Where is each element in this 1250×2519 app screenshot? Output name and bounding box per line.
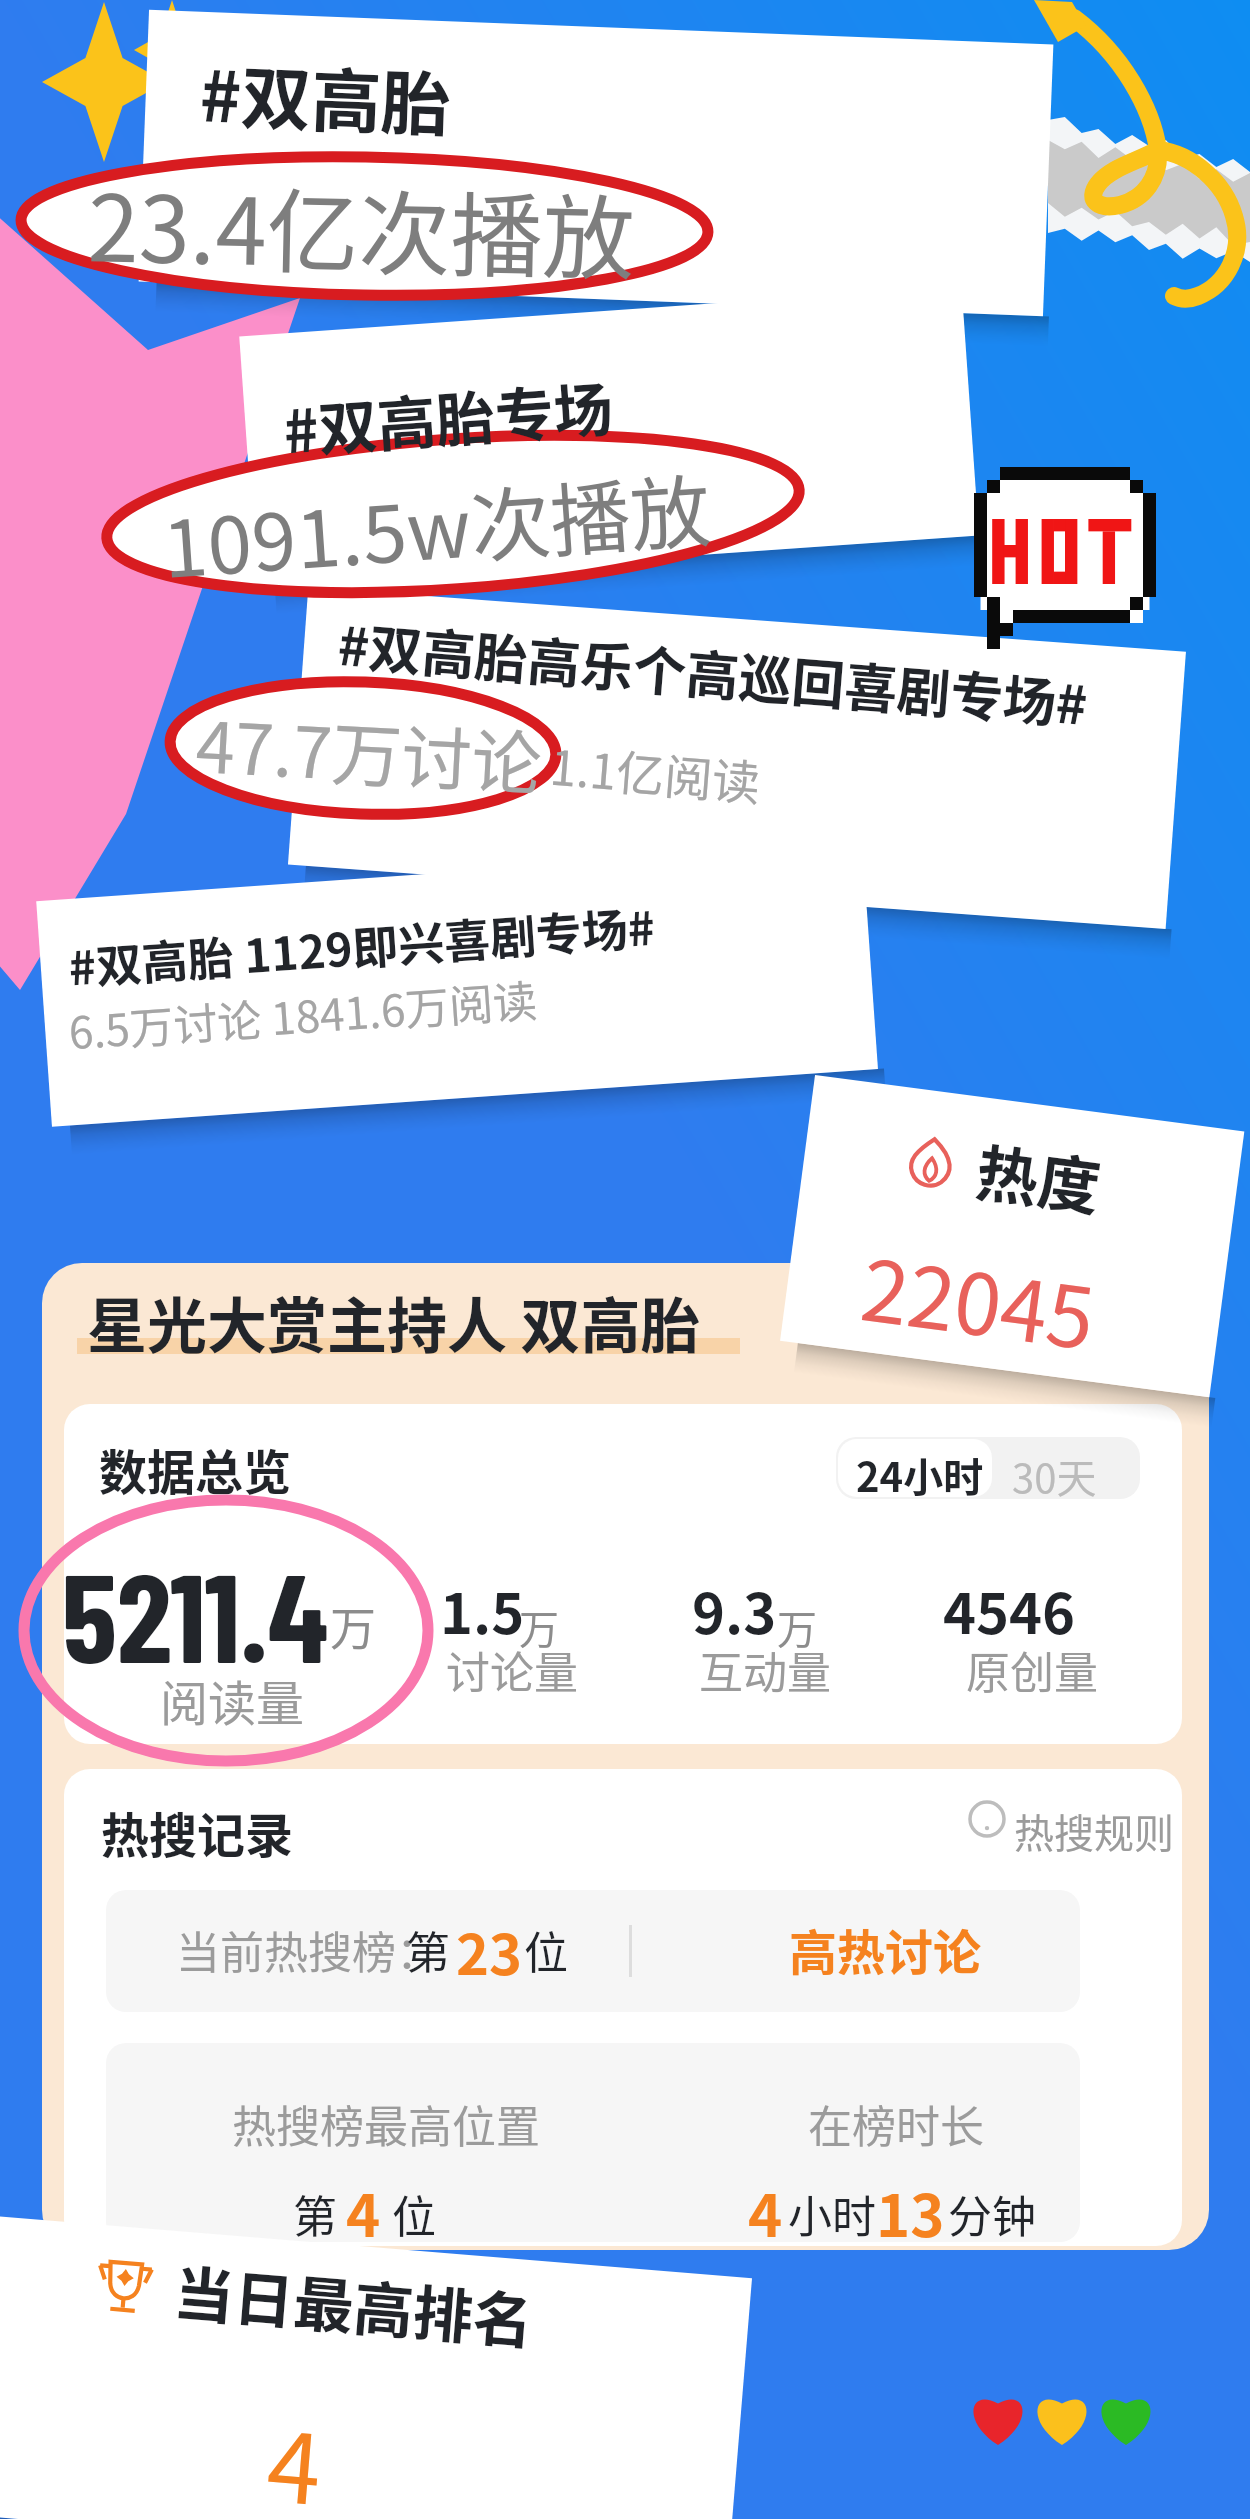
staticText: 讨论量 xyxy=(446,1638,578,1702)
staticText: 星光大赏主持人 双高胎 xyxy=(87,1278,701,1365)
staticText: #双高胎 xyxy=(198,40,454,151)
staticText: 4 xyxy=(346,2170,381,2254)
staticText: 24小时 xyxy=(856,1446,984,1504)
staticText: 小时 xyxy=(788,2182,876,2246)
staticText: 第 xyxy=(293,2182,337,2246)
button[interactable] xyxy=(836,1437,1140,1499)
button[interactable] xyxy=(780,1075,1244,1397)
staticText: 高热讨论 xyxy=(789,1914,982,1984)
staticText: 1.5 xyxy=(440,1569,525,1650)
staticText: 4 xyxy=(748,2170,783,2254)
staticText: 热搜记录 xyxy=(101,1797,294,1867)
staticText: 23.4亿次播放 xyxy=(87,154,636,299)
staticText: 分钟 xyxy=(948,2182,1036,2246)
staticText: 万 xyxy=(330,1592,376,1659)
button[interactable] xyxy=(239,286,979,586)
staticText: 13 xyxy=(876,2170,945,2254)
button[interactable] xyxy=(968,1800,1158,1852)
staticText: 1.1亿阅读 xyxy=(547,729,763,815)
staticText: 热搜榜最高位置 xyxy=(232,2092,540,2156)
staticText: 位 xyxy=(392,2182,436,2246)
button[interactable] xyxy=(139,10,1053,316)
button[interactable] xyxy=(288,587,1186,929)
staticText: 热度 xyxy=(971,1123,1107,1229)
staticText: 原创量 xyxy=(966,1638,1098,1702)
staticText: 万 xyxy=(519,1598,559,1656)
staticText: 位 xyxy=(524,1918,568,1982)
staticText: 9.3 xyxy=(692,1569,777,1650)
staticText: 4546 xyxy=(943,1569,1076,1650)
staticText: 当日最高排名 xyxy=(171,2245,537,2361)
staticText: 22045 xyxy=(855,1223,1103,1375)
staticText: 6.5万讨论 1841.6万阅读 xyxy=(66,966,540,1062)
button[interactable] xyxy=(36,843,878,1127)
staticText: 互动量 xyxy=(699,1638,831,1702)
button[interactable] xyxy=(0,2213,752,2519)
staticText: #双高胎高乐个高巡回喜剧专场# xyxy=(335,604,1091,741)
staticText: 30天 xyxy=(1012,1447,1097,1505)
staticText: 当前热搜榜： xyxy=(176,1918,440,1982)
staticText: 阅读量 xyxy=(160,1665,305,1735)
staticText: 23 xyxy=(456,1910,523,1991)
staticText: 数据总览 xyxy=(99,1434,292,1504)
staticText: 5211.4 xyxy=(62,1538,329,1688)
staticText: 4 xyxy=(262,2390,328,2519)
staticText: 第 xyxy=(406,1918,450,1982)
staticText: 47.7万讨论 xyxy=(194,691,545,810)
staticText: 1091.5w次播放 xyxy=(159,447,714,601)
staticText: 在榜时长 xyxy=(808,2092,984,2156)
staticText: 热搜规则 xyxy=(1014,1802,1174,1860)
button[interactable]: Hot topic xyxy=(974,467,1156,649)
staticText: #双高胎专场 xyxy=(280,363,615,470)
staticText: #双高胎 1129即兴喜剧专场# xyxy=(66,892,658,999)
staticText: 万 xyxy=(777,1598,817,1656)
